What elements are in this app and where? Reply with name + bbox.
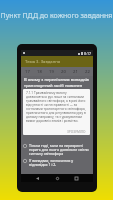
button[interactable]: 21 [69, 67, 81, 76]
button[interactable]: Back [34, 175, 41, 182]
button[interactable]: 18 [33, 67, 45, 76]
button[interactable]: 17 [21, 67, 33, 76]
staticText: 18 [37, 69, 42, 75]
staticText: 8:17 [84, 51, 92, 56]
button[interactable]: У випадках, зазначених у відповідях 1 і … [23, 158, 91, 167]
staticText: У випадках, зазначених у відповідях 1 і … [29, 158, 91, 167]
staticText: 19 [49, 69, 54, 75]
button[interactable]: ЗРОЗУМІЛО [67, 130, 86, 134]
staticText: 7.1.1 Трамвайному вагону дозволяється ру… [26, 91, 87, 123]
staticText: Пункт ПДД до кожного завдання [0, 11, 113, 21]
button[interactable]: Recent apps [73, 175, 80, 182]
staticText: Тільки тоді, коли на перехресті горить д… [29, 143, 91, 156]
button[interactable]: 22 [81, 67, 93, 76]
staticText: Тема 3. Завдання [25, 59, 61, 65]
button[interactable]: 19 [45, 67, 57, 76]
button[interactable]: Home [54, 175, 61, 182]
staticText: В якому з перелічених випадків транспорт… [24, 77, 90, 93]
button[interactable]: Тільки тоді, коли на перехресті горить д… [23, 143, 91, 156]
button[interactable]: Тема 3. Завдання [21, 56, 93, 67]
staticText: 22 [85, 69, 90, 75]
staticText: ЗРОЗУМІЛО [67, 130, 86, 134]
staticText: 20 [61, 69, 66, 75]
button[interactable]: 20 [57, 67, 69, 76]
staticText: 17 [25, 69, 30, 75]
staticText: 21 [73, 69, 78, 75]
